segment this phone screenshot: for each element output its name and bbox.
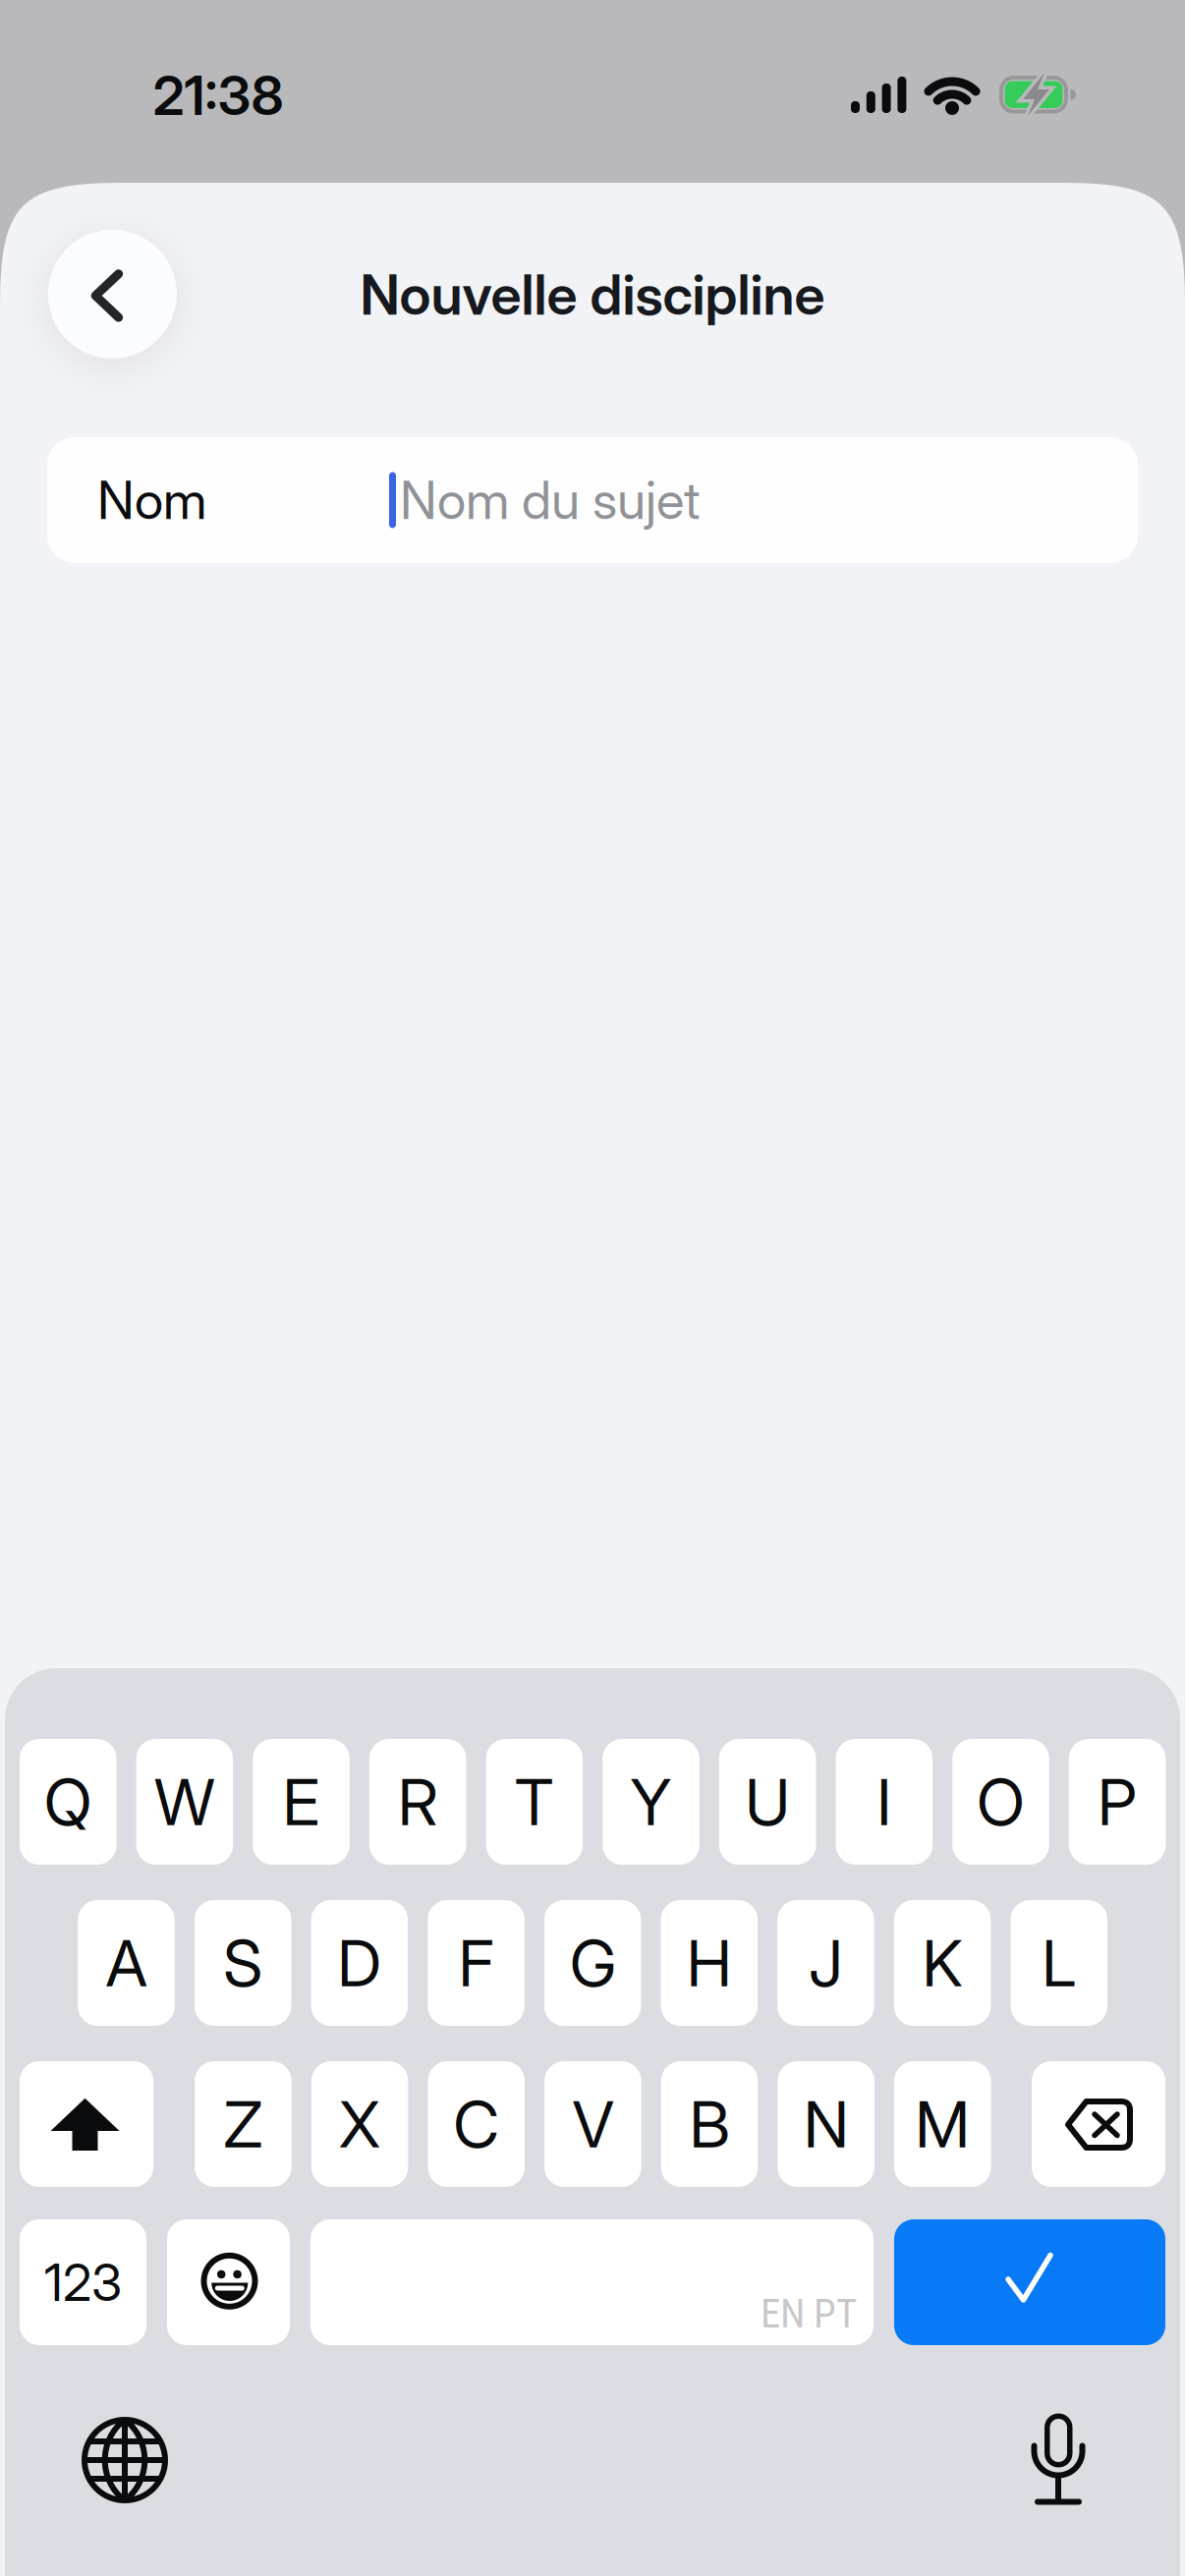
- staticText: C: [453, 2085, 499, 2163]
- staticText: 123: [44, 2251, 122, 2313]
- button[interactable]: Back: [48, 230, 177, 358]
- button[interactable]: T: [486, 1739, 583, 1865]
- button[interactable]: B: [661, 2061, 758, 2187]
- button[interactable]: X: [311, 2061, 408, 2187]
- staticText: L: [1042, 1924, 1076, 2002]
- button[interactable]: Y: [603, 1739, 699, 1865]
- staticText: D: [337, 1924, 382, 2002]
- button[interactable]: 123: [20, 2219, 146, 2345]
- button[interactable]: Shift: [20, 2061, 153, 2187]
- staticText: F: [458, 1924, 494, 2002]
- button[interactable]: F: [428, 1900, 525, 2026]
- button[interactable]: N: [778, 2061, 875, 2187]
- button[interactable]: I: [836, 1739, 933, 1865]
- button[interactable]: Space: [310, 2219, 874, 2345]
- button[interactable]: S: [194, 1900, 291, 2026]
- staticText: B: [689, 2085, 730, 2163]
- staticText: K: [922, 1924, 963, 2002]
- button[interactable]: M: [894, 2061, 991, 2187]
- button[interactable]: P: [1069, 1739, 1166, 1865]
- staticText: H: [687, 1924, 732, 2002]
- staticText: Nom du sujet: [400, 469, 700, 532]
- staticText: W: [154, 1763, 215, 1840]
- button[interactable]: D: [311, 1900, 408, 2026]
- button[interactable]: Dictate: [1004, 2406, 1112, 2514]
- staticText: I: [877, 1763, 892, 1840]
- button[interactable]: K: [894, 1900, 991, 2026]
- button[interactable]: A: [78, 1900, 175, 2026]
- button[interactable]: C: [428, 2061, 525, 2187]
- staticText: 21:38: [153, 63, 283, 128]
- staticText: Nouvelle discipline: [360, 261, 825, 328]
- button[interactable]: O: [952, 1739, 1049, 1865]
- staticText: J: [809, 1924, 843, 2002]
- staticText: Nom: [97, 469, 206, 532]
- button[interactable]: L: [1011, 1900, 1107, 2026]
- staticText: T: [515, 1763, 554, 1840]
- staticText: G: [570, 1924, 616, 2002]
- button[interactable]: Return: [894, 2219, 1165, 2345]
- staticText: V: [572, 2085, 614, 2163]
- button[interactable]: Nom: [47, 437, 1138, 563]
- staticText: O: [977, 1763, 1025, 1840]
- staticText: A: [106, 1924, 147, 2002]
- staticText: Y: [630, 1763, 672, 1840]
- staticText: N: [803, 2085, 849, 2163]
- button[interactable]: Next keyboard: [71, 2406, 179, 2514]
- staticText: EN PT: [761, 2290, 857, 2337]
- button[interactable]: Delete: [1032, 2061, 1165, 2187]
- staticText: X: [339, 2085, 380, 2163]
- staticText: M: [915, 2085, 970, 2163]
- button[interactable]: H: [661, 1900, 758, 2026]
- button[interactable]: Emoji: [167, 2219, 290, 2345]
- button[interactable]: U: [719, 1739, 816, 1865]
- button[interactable]: Z: [195, 2061, 292, 2187]
- staticText: Q: [44, 1763, 92, 1840]
- button[interactable]: E: [253, 1739, 350, 1865]
- staticText: S: [223, 1924, 263, 2002]
- staticText: P: [1098, 1763, 1137, 1840]
- staticText: R: [398, 1763, 438, 1840]
- staticText: Z: [223, 2085, 263, 2163]
- button[interactable]: G: [544, 1900, 641, 2026]
- staticText: E: [283, 1763, 320, 1840]
- button[interactable]: V: [545, 2061, 641, 2187]
- button[interactable]: J: [777, 1900, 874, 2026]
- button[interactable]: W: [136, 1739, 233, 1865]
- button[interactable]: R: [369, 1739, 466, 1865]
- button[interactable]: Q: [20, 1739, 116, 1865]
- staticText: U: [745, 1763, 790, 1840]
